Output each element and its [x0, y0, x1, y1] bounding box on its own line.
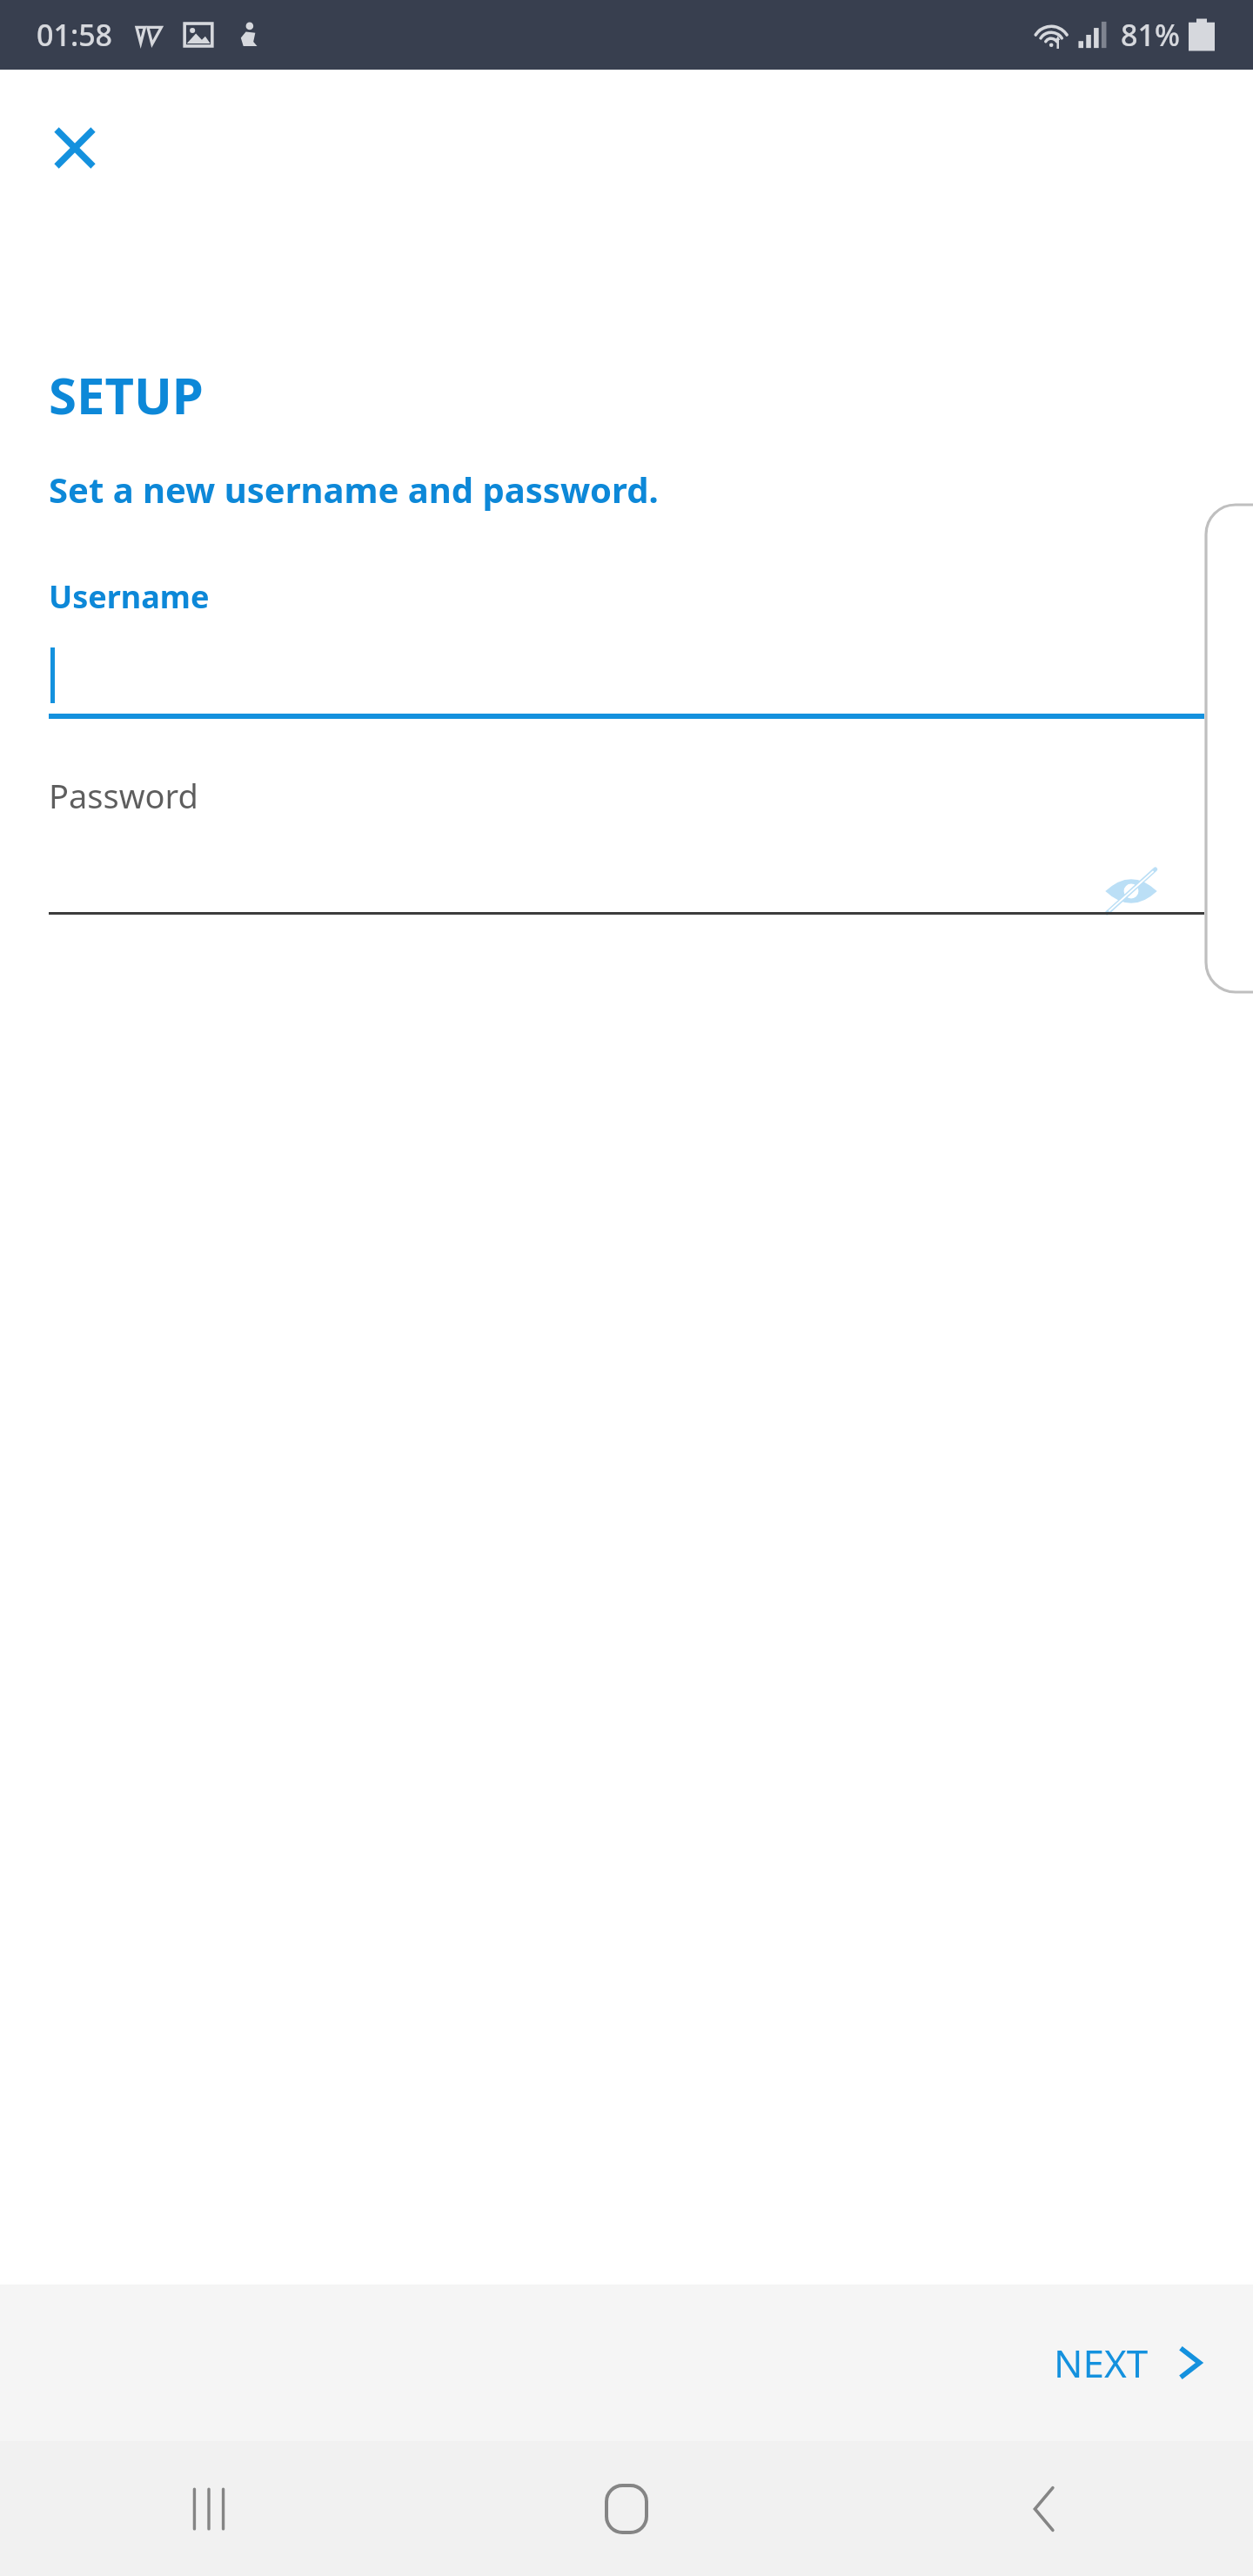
- staticText: 81%: [1121, 15, 1180, 55]
- staticText: SETUP: [49, 360, 204, 429]
- button[interactable]: Recents: [0, 2441, 418, 2576]
- button[interactable]: Password: [0, 773, 1253, 915]
- button[interactable]: Show password: [1100, 860, 1163, 922]
- staticText: Password: [49, 773, 198, 818]
- staticText: NEXT: [1054, 2337, 1149, 2389]
- button[interactable]: Back: [835, 2441, 1253, 2576]
- button[interactable]: Close: [31, 104, 118, 191]
- button[interactable]: Username: [0, 575, 1253, 719]
- button[interactable]: NEXT: [1033, 2319, 1230, 2406]
- staticText: 01:58: [37, 15, 113, 55]
- staticText: Username: [49, 575, 210, 618]
- button[interactable]: Home: [418, 2441, 835, 2576]
- staticText: Set a new username and password.: [49, 466, 659, 513]
